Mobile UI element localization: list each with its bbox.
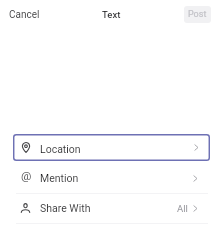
button[interactable]: Location	[13, 134, 210, 161]
staticText: Mention	[40, 172, 79, 184]
staticText: Share With	[40, 202, 91, 214]
button[interactable]: Share with	[0, 193, 222, 223]
staticText: Cancel	[9, 9, 40, 21]
staticText: @	[21, 169, 32, 182]
other: Location	[21, 142, 30, 153]
button[interactable]: Mention	[0, 163, 222, 193]
staticText: Location	[40, 143, 81, 155]
other: Share with	[21, 203, 30, 213]
staticText: All	[177, 203, 188, 214]
staticText: Text	[102, 9, 121, 20]
other: Mention	[21, 173, 30, 183]
button[interactable]: Cancel	[5, 4, 44, 26]
button[interactable]: Post	[184, 6, 211, 23]
staticText: Post	[188, 9, 207, 20]
